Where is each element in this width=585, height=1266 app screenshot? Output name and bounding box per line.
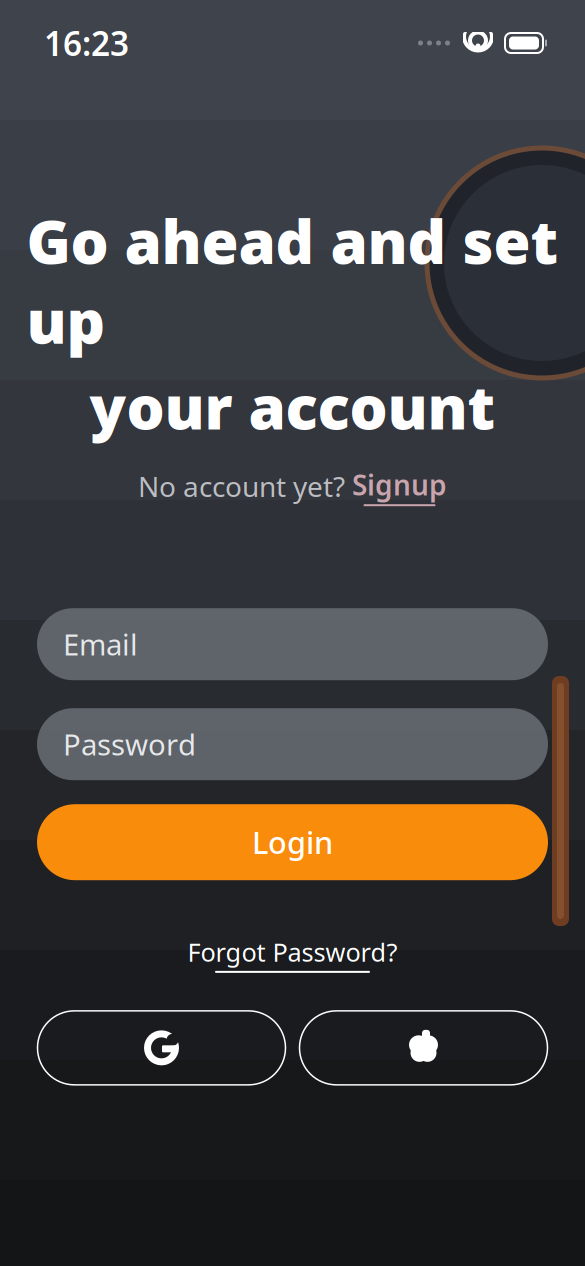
button[interactable]: Sign in with Google xyxy=(37,1011,285,1085)
staticText: No account yet? xyxy=(138,467,345,505)
staticText: 16:23 xyxy=(44,21,129,65)
staticText: Signup xyxy=(352,466,447,503)
button[interactable]: Email xyxy=(37,608,548,680)
staticText: your account xyxy=(89,366,495,446)
button[interactable]: Sign in with Apple xyxy=(299,1011,547,1085)
button[interactable]: Login xyxy=(37,804,548,880)
button[interactable]: Signup xyxy=(352,466,447,506)
button[interactable]: Forgot Password? xyxy=(177,929,407,979)
staticText: Login xyxy=(252,822,333,863)
staticText: Go ahead and set up xyxy=(26,201,558,360)
staticText: Password xyxy=(63,725,196,764)
button[interactable]: Password xyxy=(37,708,548,780)
staticText: Email xyxy=(63,625,138,664)
staticText: Forgot Password? xyxy=(187,935,397,969)
